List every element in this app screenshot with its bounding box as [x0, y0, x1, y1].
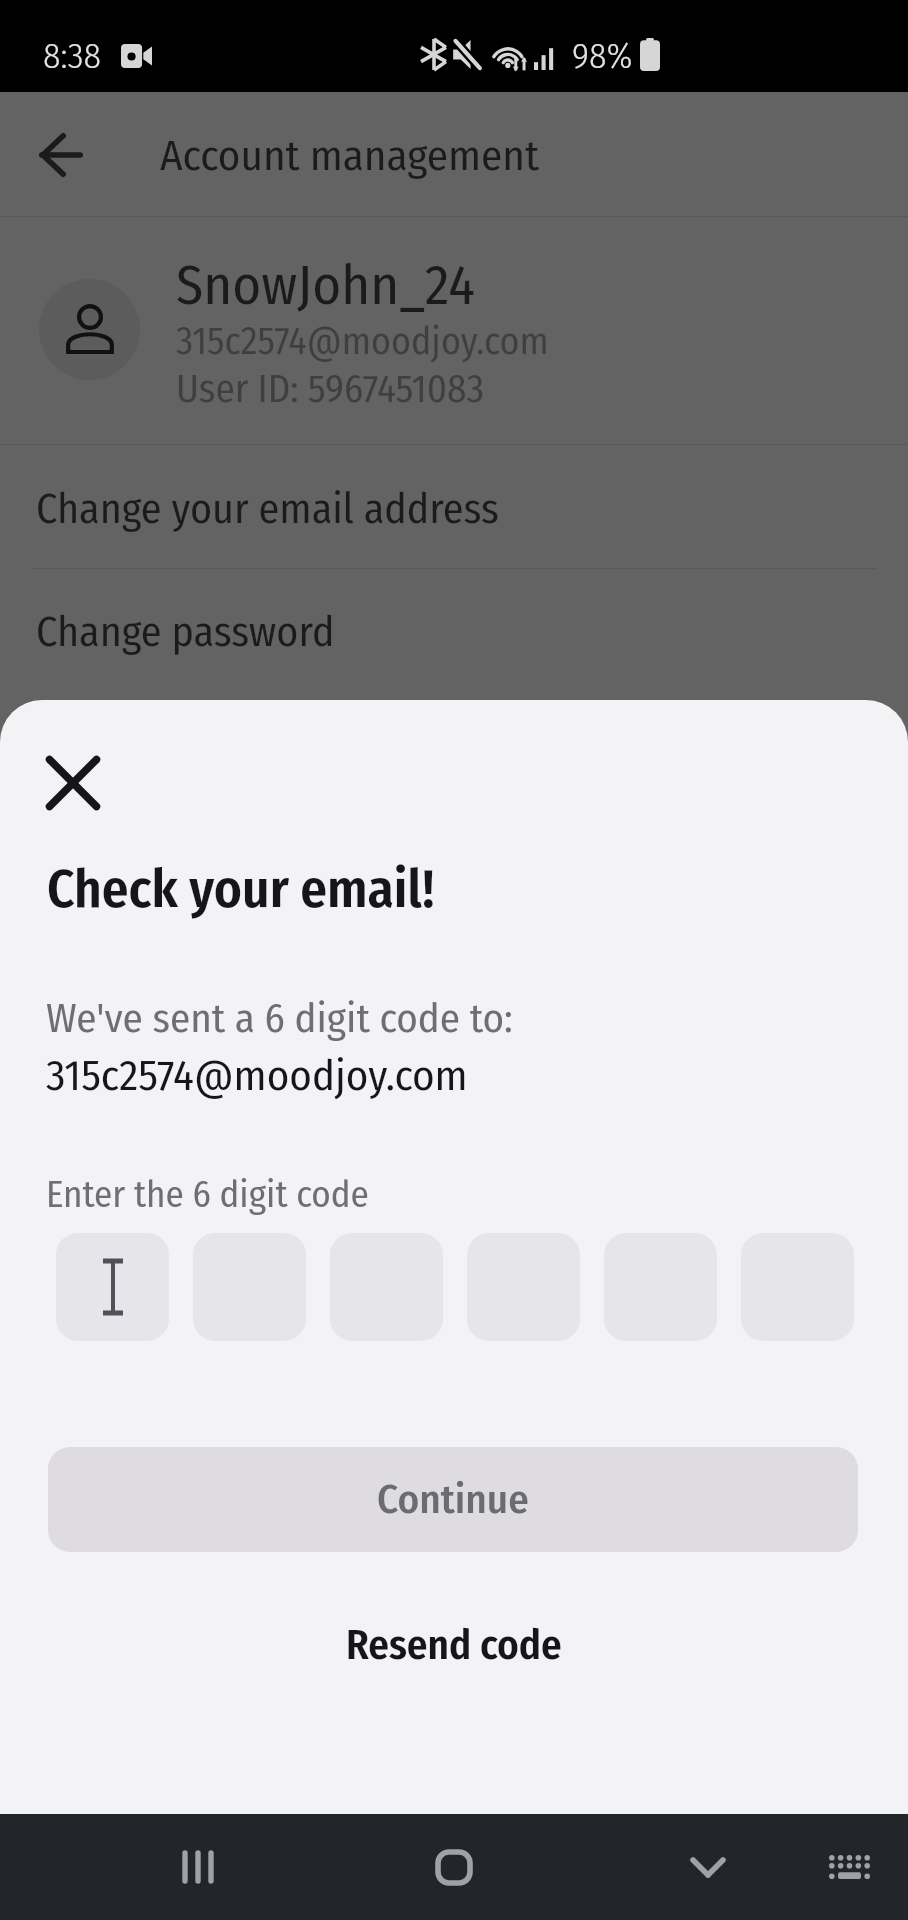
- staticText: 98%: [572, 34, 633, 77]
- button[interactable]: Close: [22, 732, 124, 834]
- button[interactable]: [0, 569, 908, 692]
- staticText: User ID: 5967451083: [176, 366, 485, 413]
- button[interactable]: Hide keyboard: [661, 1822, 755, 1912]
- button[interactable]: [0, 92, 908, 216]
- staticText: Continue: [377, 1475, 529, 1524]
- staticText: Resend code: [346, 1621, 562, 1670]
- staticText: Change your email address: [36, 484, 500, 534]
- staticText: SnowJohn_24: [176, 253, 475, 319]
- staticText: Change password: [36, 607, 335, 657]
- staticText: We've sent a 6 digit code to:: [46, 994, 513, 1043]
- button[interactable]: Recent apps: [151, 1822, 245, 1912]
- staticText: 8:38: [43, 34, 102, 77]
- button[interactable]: [0, 445, 908, 568]
- staticText: Account management: [160, 130, 539, 182]
- button[interactable]: Home: [407, 1822, 501, 1912]
- button[interactable]: Change keyboard: [802, 1822, 896, 1912]
- button[interactable]: Back: [18, 112, 104, 198]
- staticText: Check your email!: [47, 857, 435, 921]
- staticText: Enter the 6 digit code: [46, 1172, 369, 1216]
- button[interactable]: [0, 217, 908, 445]
- button[interactable]: Continue: [48, 1447, 858, 1552]
- button[interactable]: Resend code: [0, 1590, 908, 1700]
- button[interactable]: Code digit 1: [56, 1233, 169, 1341]
- staticText: 315c2574@moodjoy.com: [46, 1050, 468, 1102]
- staticText: 315c2574@moodjoy.com: [176, 318, 549, 364]
